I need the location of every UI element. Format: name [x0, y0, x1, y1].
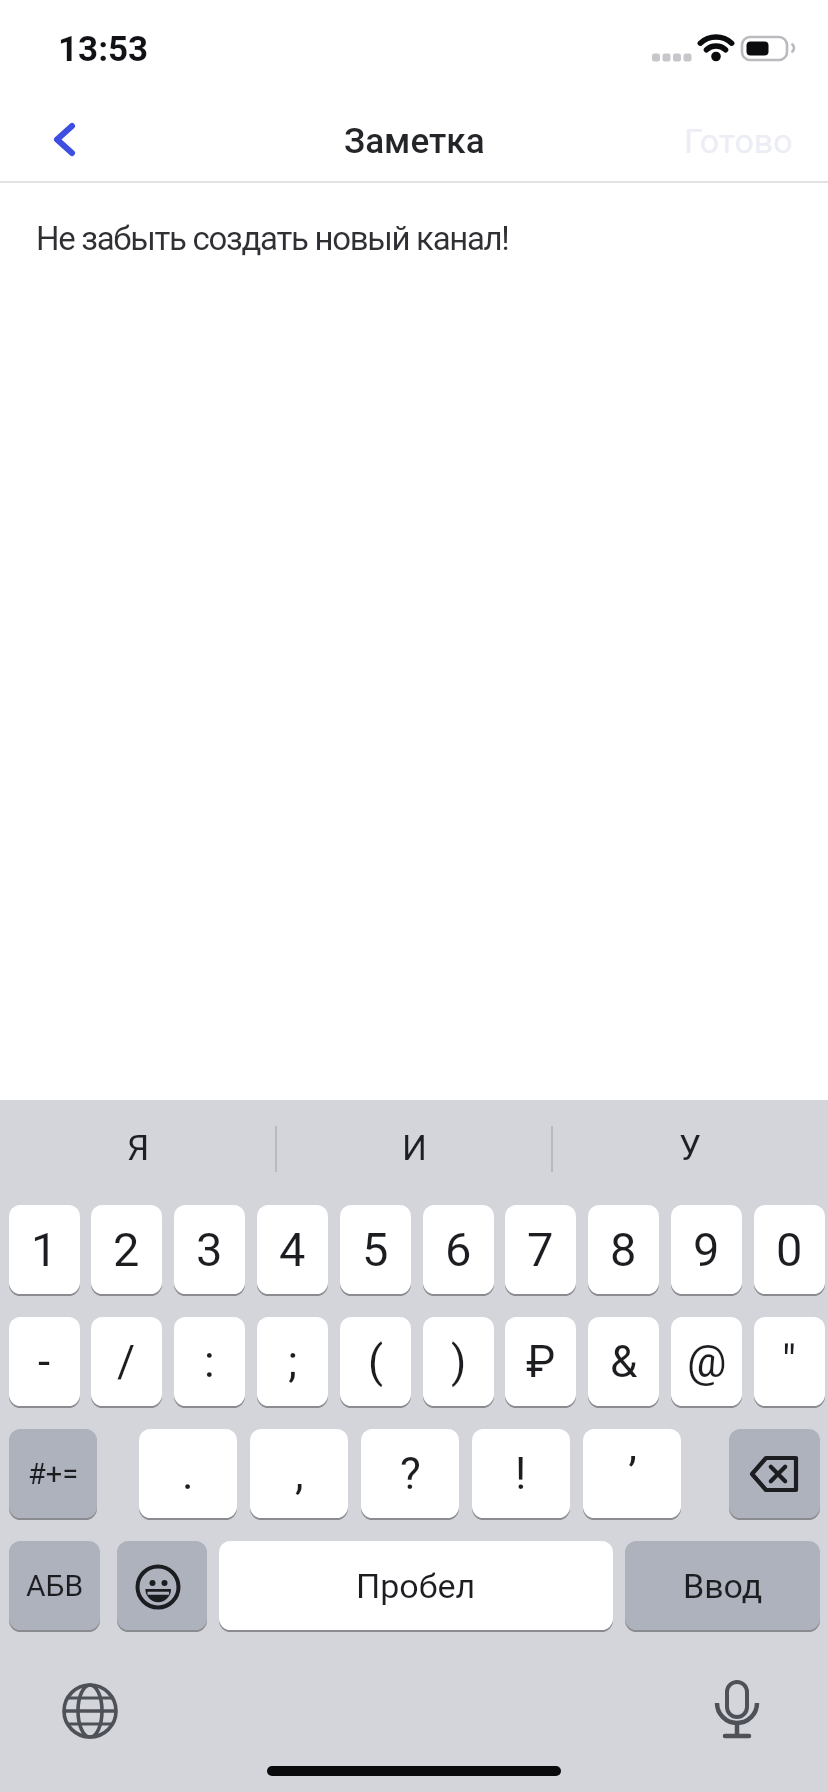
button[interactable]: 5	[340, 1205, 411, 1294]
staticText: ₽	[526, 1336, 556, 1388]
button[interactable]: И	[276, 1108, 552, 1188]
staticText: 9	[693, 1222, 720, 1277]
button[interactable]	[707, 1674, 767, 1744]
staticText: Готово	[684, 121, 793, 161]
button[interactable]: 2	[91, 1205, 162, 1294]
button[interactable]: У	[552, 1108, 828, 1188]
button[interactable]: ,	[250, 1429, 348, 1518]
staticText: 13:53	[58, 29, 149, 70]
button[interactable]: !	[472, 1429, 570, 1518]
button[interactable]: Готово	[668, 118, 808, 164]
button[interactable]: 4	[257, 1205, 328, 1294]
button[interactable]	[40, 110, 90, 170]
button[interactable]: ;	[257, 1317, 328, 1406]
staticText: Не забыть создать новый канал!	[36, 219, 509, 258]
staticText: 4	[279, 1222, 306, 1277]
button[interactable]	[117, 1541, 207, 1630]
staticText: #+=	[28, 1457, 79, 1491]
staticText: 2	[113, 1222, 140, 1277]
staticText: И	[402, 1128, 427, 1169]
staticText: 3	[196, 1222, 223, 1277]
button[interactable]: &	[588, 1317, 659, 1406]
button[interactable]: -	[9, 1317, 80, 1406]
button[interactable]: ?	[361, 1429, 459, 1518]
staticText: :	[204, 1336, 215, 1388]
button[interactable]: 3	[174, 1205, 245, 1294]
staticText: ,	[295, 1448, 304, 1500]
staticText: (	[368, 1336, 384, 1388]
button[interactable]: АБВ	[9, 1541, 100, 1630]
staticText: "	[782, 1336, 797, 1388]
staticText: Ввод	[683, 1566, 763, 1606]
button[interactable]: 7	[505, 1205, 576, 1294]
staticText: &	[610, 1336, 638, 1388]
button[interactable]: Я	[0, 1108, 276, 1188]
staticText: Я	[127, 1128, 150, 1169]
button[interactable]: (	[340, 1317, 411, 1406]
staticText: -	[38, 1336, 51, 1388]
button[interactable]: #+=	[9, 1429, 97, 1518]
button[interactable]: 1	[9, 1205, 80, 1294]
button[interactable]: )	[423, 1317, 494, 1406]
staticText: .	[182, 1448, 194, 1500]
staticText: ’	[628, 1448, 637, 1500]
button[interactable]: 6	[423, 1205, 494, 1294]
staticText: 1	[31, 1222, 58, 1277]
button[interactable]: @	[671, 1317, 742, 1406]
button[interactable]: 8	[588, 1205, 659, 1294]
staticText: !	[515, 1448, 527, 1500]
staticText: @	[687, 1336, 727, 1388]
button[interactable]: ’	[583, 1429, 681, 1518]
button[interactable]: Пробел	[219, 1541, 613, 1630]
button[interactable]: Ввод	[625, 1541, 820, 1630]
button[interactable]: /	[91, 1317, 162, 1406]
staticText: 7	[527, 1222, 554, 1277]
staticText: Пробел	[356, 1566, 476, 1606]
button[interactable]: 0	[754, 1205, 825, 1294]
staticText: ;	[288, 1336, 298, 1388]
staticText: 8	[610, 1222, 637, 1277]
button[interactable]: .	[139, 1429, 237, 1518]
staticText: ?	[400, 1448, 421, 1500]
button[interactable]: :	[174, 1317, 245, 1406]
staticText: 5	[362, 1222, 389, 1277]
staticText: )	[451, 1336, 467, 1388]
staticText: Заметка	[344, 121, 485, 162]
staticText: У	[679, 1128, 702, 1169]
button[interactable]	[729, 1429, 820, 1518]
button[interactable]: 9	[671, 1205, 742, 1294]
button[interactable]	[58, 1679, 122, 1743]
button[interactable]: "	[754, 1317, 825, 1406]
staticText: АБВ	[26, 1568, 84, 1603]
button[interactable]: ₽	[505, 1317, 576, 1406]
staticText: 0	[776, 1222, 803, 1277]
staticText: /	[117, 1336, 136, 1388]
staticText: 6	[445, 1222, 472, 1277]
